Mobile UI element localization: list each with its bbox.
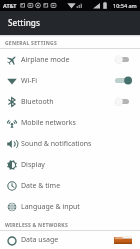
staticText: Sound & notifications — [21, 139, 92, 149]
staticText: 10:54 am — [113, 2, 137, 9]
button[interactable]: Bluetooth — [0, 91, 140, 112]
staticText: Date & time — [21, 181, 61, 191]
staticText: Mobile networks — [21, 118, 76, 128]
button[interactable]: Airplane mode — [0, 49, 140, 70]
staticText: Language & input — [21, 202, 80, 212]
button[interactable]: Display — [0, 154, 140, 175]
staticText: Bluetooth — [21, 97, 54, 107]
staticText: WIRELESS & NETWORKS — [5, 222, 68, 229]
button[interactable]: Switch off — [115, 55, 132, 64]
button[interactable]: Sound & notifications — [0, 133, 140, 154]
button[interactable]: Data usage — [0, 231, 140, 249]
button[interactable]: Switch off — [115, 97, 132, 106]
staticText: Wi-Fi — [21, 76, 38, 86]
staticText: Data usage — [21, 235, 59, 245]
staticText: Settings — [8, 17, 40, 28]
staticText: AT&T — [3, 2, 17, 9]
staticText: Airplane mode — [21, 55, 70, 65]
button[interactable]: Wi-Fi — [0, 70, 140, 91]
staticText: GENERAL SETTINGS — [5, 40, 57, 47]
staticText: Display — [21, 160, 45, 170]
button[interactable]: Data usage chart — [114, 236, 132, 244]
button[interactable]: Language & input — [0, 196, 140, 217]
button[interactable]: Mobile networks — [0, 112, 140, 133]
button[interactable]: Switch on — [115, 76, 132, 85]
button[interactable]: Date & time — [0, 175, 140, 196]
